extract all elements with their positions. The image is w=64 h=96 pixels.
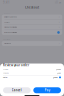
button[interactable]: Cancel: [3, 87, 31, 93]
staticText: $4.99: [57, 72, 61, 74]
staticText: Review your order: [3, 63, 29, 67]
staticText: Contact: [4, 21, 9, 23]
button[interactable]: Delivery address: [2, 15, 62, 19]
staticText: Total: [3, 76, 7, 78]
staticText: Express shipping: [4, 32, 17, 33]
button[interactable]: Visa ···· 4242: [2, 41, 62, 46]
staticText: $42.00: [56, 68, 61, 70]
staticText: Checkout: [25, 6, 39, 9]
staticText: Subtotal: [3, 68, 8, 70]
staticText: Delivery address: [4, 16, 17, 18]
button[interactable]: Contact: [2, 20, 62, 25]
staticText: $46.99: [53, 76, 58, 78]
staticText: Cancel: [12, 88, 22, 92]
button[interactable]: Standard shipping: [2, 25, 62, 30]
staticText: Shipping: [3, 72, 9, 74]
staticText: Visa ···· 4242: [4, 43, 11, 44]
button[interactable]: Pay: [33, 87, 61, 93]
staticText: 9:41: [3, 1, 10, 4]
staticText: Standard shipping: [4, 26, 17, 28]
staticText: Pay: [45, 88, 50, 92]
button[interactable]: Express shipping: [2, 30, 62, 35]
staticText: ıll ▰: [55, 1, 61, 4]
